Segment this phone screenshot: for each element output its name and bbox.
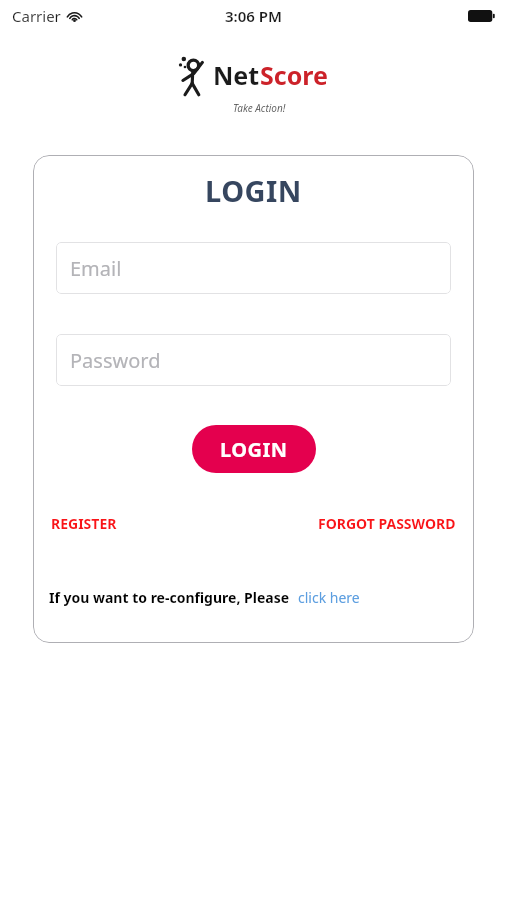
staticText: Score [260, 58, 328, 92]
button[interactable]: Email [56, 242, 451, 294]
staticText: Password [70, 347, 161, 374]
staticText: Carrier [12, 6, 61, 26]
staticText: click here [298, 588, 360, 607]
staticText: Net [213, 58, 260, 92]
staticText: FORGOT PASSWORD [318, 514, 456, 533]
staticText: LOGIN [205, 171, 302, 210]
staticText: Take Action! [233, 101, 286, 115]
staticText: If you want to re-configure, Please [49, 588, 290, 607]
staticText: REGISTER [51, 514, 117, 533]
button[interactable]: LOGIN [192, 425, 316, 473]
button[interactable]: REGISTER [49, 510, 119, 537]
button[interactable]: FORGOT PASSWORD [316, 510, 458, 537]
button[interactable]: Password [56, 334, 451, 386]
staticText: 3:06 PM [225, 6, 282, 26]
button[interactable]: click here [297, 585, 361, 610]
staticText: LOGIN [220, 436, 288, 463]
staticText: Email [70, 255, 122, 282]
